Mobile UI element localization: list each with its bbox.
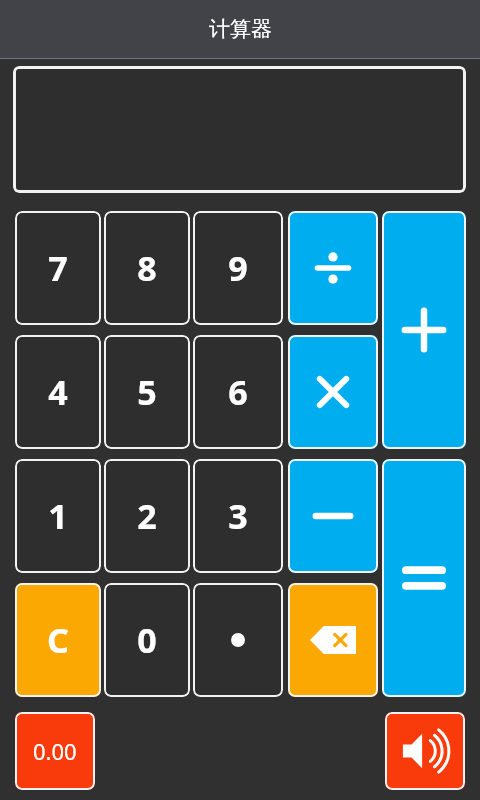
button[interactable]: Decimal point [193, 583, 283, 697]
staticText: 4 [48, 369, 68, 415]
button[interactable]: Multiply [288, 335, 378, 449]
staticText: 0.00 [33, 736, 77, 766]
staticText: 7 [48, 245, 68, 291]
staticText: 3 [228, 493, 248, 539]
button[interactable]: C [15, 583, 101, 697]
staticText: 5 [137, 369, 157, 415]
button[interactable]: 5 [104, 335, 190, 449]
button[interactable]: 9 [193, 211, 283, 325]
button[interactable]: Divide [288, 211, 378, 325]
button[interactable]: Add [382, 211, 466, 449]
staticText: 1 [48, 493, 68, 539]
button[interactable]: 8 [104, 211, 190, 325]
button[interactable]: 0.00 [15, 712, 95, 790]
button[interactable] [13, 66, 466, 193]
button[interactable]: 4 [15, 335, 101, 449]
button[interactable]: 6 [193, 335, 283, 449]
staticText: 0 [137, 617, 157, 663]
button[interactable]: 0 [104, 583, 190, 697]
button[interactable]: Backspace [288, 583, 378, 697]
button[interactable]: 3 [193, 459, 283, 573]
button[interactable]: Subtract [288, 459, 378, 573]
button[interactable]: 2 [104, 459, 190, 573]
staticText: 9 [228, 245, 248, 291]
staticText: 6 [228, 369, 248, 415]
button[interactable]: 1 [15, 459, 101, 573]
button[interactable]: Equals [382, 459, 466, 697]
staticText: 2 [137, 493, 157, 539]
button[interactable]: Sound [385, 712, 465, 790]
staticText: C [47, 617, 69, 663]
button[interactable]: 7 [15, 211, 101, 325]
staticText: 计算器 [209, 16, 272, 42]
staticText: 8 [137, 245, 157, 291]
